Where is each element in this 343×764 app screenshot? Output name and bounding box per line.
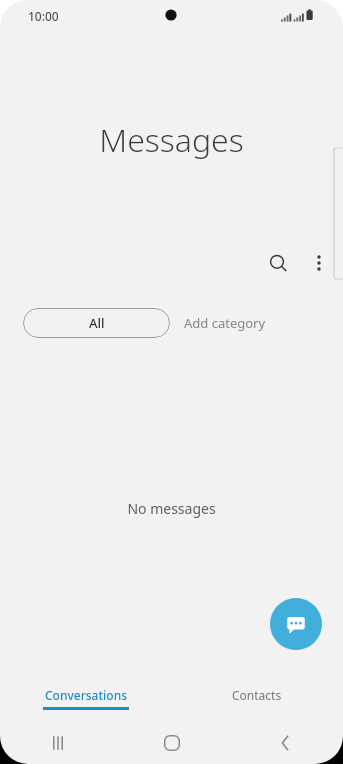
staticText: 10:00 bbox=[28, 8, 59, 24]
staticText: All bbox=[89, 314, 105, 332]
button[interactable]: Recents bbox=[0, 722, 115, 764]
button[interactable]: Conversations bbox=[0, 676, 171, 712]
button[interactable]: More options bbox=[303, 247, 335, 279]
button[interactable]: Add category bbox=[170, 308, 280, 338]
button[interactable]: Search bbox=[262, 247, 294, 279]
staticText: Contacts bbox=[232, 687, 282, 703]
button[interactable]: New conversation bbox=[270, 598, 322, 650]
button[interactable]: Home bbox=[115, 722, 229, 764]
staticText: Conversations bbox=[45, 687, 127, 703]
button[interactable]: All bbox=[23, 308, 170, 338]
staticText: No messages bbox=[127, 499, 216, 518]
staticText: Messages bbox=[99, 118, 244, 162]
button[interactable]: Contacts bbox=[171, 676, 343, 712]
button[interactable]: Back bbox=[229, 722, 343, 764]
staticText: Add category bbox=[184, 314, 266, 332]
